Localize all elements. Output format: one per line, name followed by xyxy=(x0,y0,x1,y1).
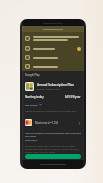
other: Change payment method xyxy=(77,121,81,125)
button[interactable] xyxy=(25,154,81,159)
staticText: By tapping "Subscribe", you accept the f… xyxy=(25,145,81,154)
staticText: Annual Subscription Plan xyxy=(37,83,74,87)
staticText: Starting today xyxy=(25,95,44,99)
button[interactable]: Annual Subscription Plan xyxy=(22,81,84,92)
staticText: $49.99/year xyxy=(65,95,81,99)
button[interactable]: See details xyxy=(22,102,45,107)
staticText: Mastercard ••1234 xyxy=(35,121,59,125)
staticText: Google Play xyxy=(25,73,40,77)
button[interactable] xyxy=(22,33,84,44)
button[interactable] xyxy=(22,44,84,53)
staticText: Cancel anytime in Subscriptions on Googl… xyxy=(25,110,77,113)
staticText: See details xyxy=(25,103,38,106)
staticText: Canvas Drawing App xyxy=(37,88,60,91)
button[interactable] xyxy=(22,62,84,71)
staticText: Learn more xyxy=(25,139,37,142)
staticText: You'll be charged $49.99 automatically e… xyxy=(25,132,81,138)
button[interactable]: Mastercard ••1234 xyxy=(22,116,84,129)
button[interactable] xyxy=(22,53,84,62)
